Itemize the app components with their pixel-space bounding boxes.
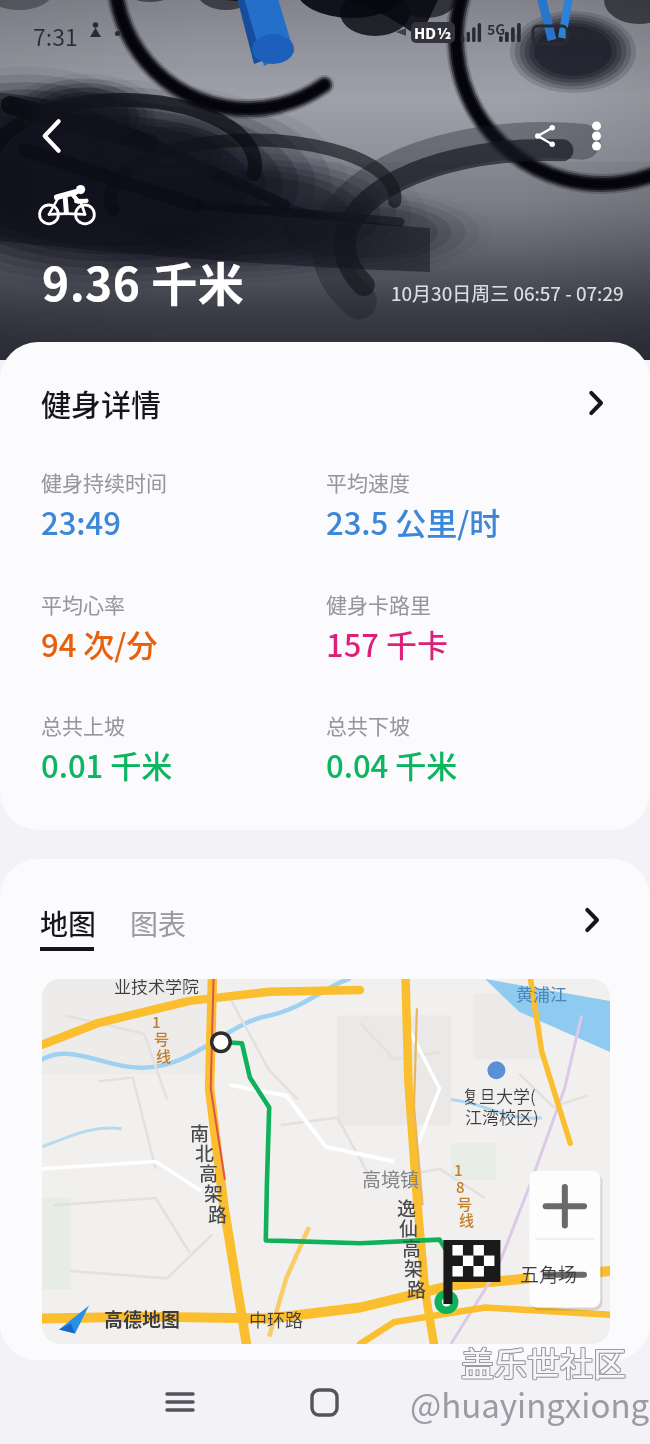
staticText: 90% xyxy=(572,19,617,51)
staticText: 94 次/分 xyxy=(41,621,158,666)
staticText: 157 千卡 xyxy=(326,621,448,666)
staticText: 号 xyxy=(154,1028,170,1050)
staticText: 7:31 xyxy=(33,19,78,52)
staticText: 23.5 公里/时 xyxy=(326,499,501,544)
staticText: 9.36 千米 xyxy=(42,248,245,315)
staticText: 线 xyxy=(156,1045,172,1067)
staticText: 健身详情 xyxy=(41,381,161,424)
staticText: 高 xyxy=(402,1234,422,1262)
button[interactable]: Home xyxy=(296,1374,352,1430)
staticText: 盖乐世社区 xyxy=(460,1337,625,1385)
staticText: 线 xyxy=(459,1209,475,1231)
staticText: 路 xyxy=(407,1275,427,1303)
staticText: 高境镇 xyxy=(362,1165,420,1193)
staticText: 23:49 xyxy=(41,499,121,544)
staticText: 业技术学院 xyxy=(114,979,199,998)
staticText: 健身持续时间 xyxy=(41,467,167,497)
staticText: 1 xyxy=(152,1011,161,1033)
button[interactable]: 健身详情 xyxy=(0,342,650,438)
staticText: 五角场 xyxy=(520,1260,578,1288)
staticText: 高 xyxy=(199,1159,219,1187)
staticText: 南 xyxy=(190,1119,210,1147)
staticText: 复旦大学( xyxy=(462,1083,536,1108)
staticText: 0.01 千米 xyxy=(41,742,173,787)
staticText: 1 xyxy=(454,1159,463,1181)
button[interactable]: Share xyxy=(518,109,572,163)
staticText: 总共下坡 xyxy=(326,710,410,740)
staticText: 逸 xyxy=(397,1194,417,1222)
button[interactable]: Recent apps xyxy=(152,1374,208,1430)
staticText: 盖乐世社区 xyxy=(460,1339,625,1387)
staticText: 平均速度 xyxy=(326,467,410,497)
staticText: 10月30日周三 06:57 - 07:29 xyxy=(391,279,624,307)
button[interactable]: 图表 xyxy=(130,903,187,944)
staticText: 平均心率 xyxy=(41,589,125,619)
staticText: 号 xyxy=(457,1193,473,1215)
staticText: ½ xyxy=(437,22,452,43)
button[interactable]: Open map xyxy=(575,903,609,937)
staticText: 盖乐世社区 xyxy=(462,1339,627,1387)
staticText: 总共上坡 xyxy=(41,710,125,740)
staticText: 0.04 千米 xyxy=(326,742,458,787)
staticText: 5G xyxy=(487,19,506,39)
staticText: 健身卡路里 xyxy=(326,589,431,619)
button[interactable]: 地图 xyxy=(40,903,97,951)
staticText: 地图 xyxy=(40,903,97,944)
staticText: 北 xyxy=(195,1139,215,1167)
staticText: 黄浦江 xyxy=(516,981,567,1006)
staticText: 中环路 xyxy=(249,1306,303,1332)
button[interactable]: More options xyxy=(569,109,623,163)
staticText: 架 xyxy=(204,1179,224,1207)
button[interactable]: Back xyxy=(24,109,78,163)
staticText: @huayingxiong xyxy=(410,1380,650,1428)
button[interactable]: Route map xyxy=(42,979,610,1344)
staticText: HD xyxy=(414,22,437,43)
staticText: 仙 xyxy=(399,1214,419,1242)
staticText: 盖乐世社区 xyxy=(461,1339,626,1387)
staticText: 架 xyxy=(404,1254,424,1282)
staticText: 8 xyxy=(456,1176,465,1198)
staticText: 盖乐世社区 xyxy=(462,1337,627,1385)
staticText: 盖乐世社区 xyxy=(460,1338,625,1386)
staticText: 高德地图 xyxy=(104,1305,181,1333)
staticText: 路 xyxy=(208,1200,228,1228)
staticText: 图表 xyxy=(130,903,187,944)
staticText: 盖乐世社区 xyxy=(461,1338,626,1386)
staticText: 盖乐世社区 xyxy=(462,1338,627,1386)
staticText: 盖乐世社区 xyxy=(461,1337,626,1385)
staticText: 江湾校区) xyxy=(465,1104,539,1129)
